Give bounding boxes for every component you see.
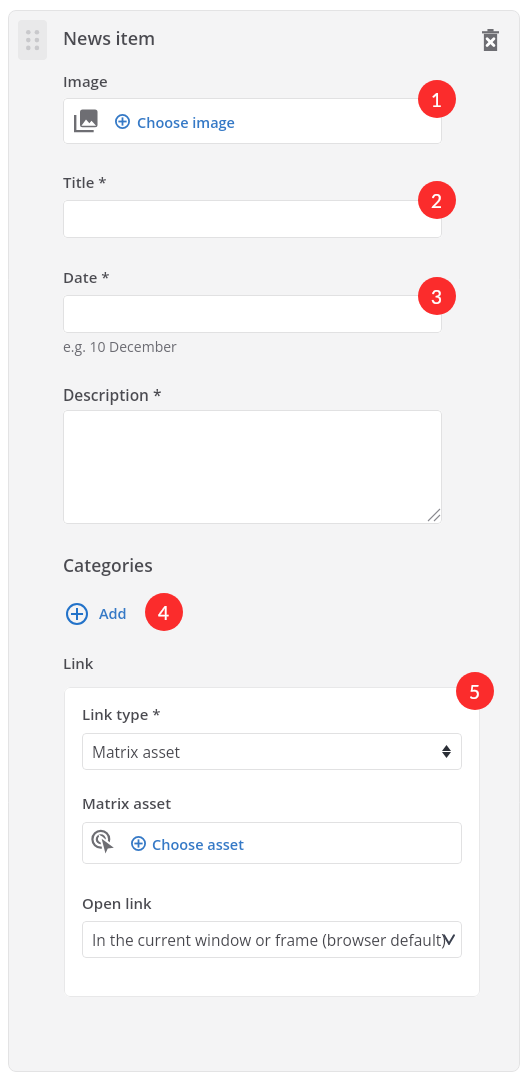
button[interactable]	[63, 295, 442, 333]
staticText: Open link	[82, 893, 152, 913]
staticText: Choose image	[137, 113, 235, 133]
staticText: Title *	[63, 172, 107, 192]
staticText: Date *	[63, 267, 110, 287]
button[interactable]: Add	[63, 598, 133, 630]
staticText: 5	[469, 680, 481, 703]
staticText: In the current window or frame (browser …	[92, 929, 446, 950]
staticText: 3	[431, 285, 443, 308]
button[interactable]: Reorder item	[18, 20, 47, 60]
staticText: Categories	[63, 553, 153, 577]
staticText: Choose asset	[152, 835, 244, 855]
staticText: News item	[63, 26, 156, 51]
staticText: Link type *	[82, 704, 161, 724]
button[interactable]	[63, 410, 442, 524]
staticText: Add	[99, 604, 127, 624]
staticText: Matrix asset	[82, 793, 172, 813]
button[interactable]: Matrix asset	[82, 733, 462, 770]
button[interactable]	[82, 822, 462, 864]
staticText: Link	[63, 653, 94, 673]
staticText: Image	[63, 71, 108, 91]
button[interactable]: Delete	[474, 24, 506, 56]
staticText: Matrix asset	[92, 741, 181, 762]
button[interactable]: In the current window or frame (browser …	[82, 921, 462, 958]
staticText: 2	[431, 189, 443, 212]
button[interactable]	[63, 200, 442, 238]
staticText: 1	[431, 88, 443, 111]
staticText: e.g. 10 December	[63, 337, 177, 356]
button[interactable]	[63, 98, 442, 144]
staticText: Description *	[63, 384, 162, 405]
staticText: 4	[158, 601, 170, 624]
